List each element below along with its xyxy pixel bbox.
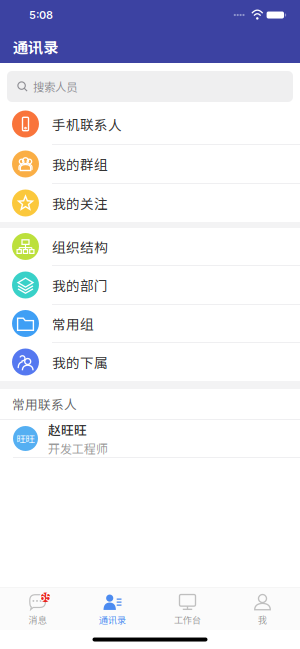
staticText: 我的下属 <box>52 352 108 372</box>
staticText: 我的部门 <box>52 275 108 295</box>
button[interactable]: 我的下属 <box>0 343 300 381</box>
button[interactable]: 旺旺 <box>0 420 300 458</box>
button[interactable]: 组织结构 <box>0 228 300 266</box>
staticText: 旺旺 <box>16 432 34 445</box>
staticText: 工作台 <box>174 613 201 626</box>
staticText: 组织结构 <box>52 237 108 256</box>
staticText: 消息 <box>28 613 46 626</box>
staticText: 常用组 <box>52 314 94 333</box>
staticText: 手机联系人 <box>52 114 122 134</box>
button[interactable]: 我的部门 <box>0 266 300 305</box>
staticText: 65 <box>39 591 51 603</box>
staticText: 通讯录 <box>99 613 126 626</box>
button[interactable]: 常用组 <box>0 305 300 343</box>
button[interactable]: 65 <box>0 588 75 630</box>
button[interactable]: 手机联系人 <box>0 104 300 145</box>
staticText: 开发工程师 <box>48 440 108 457</box>
staticText: 搜索人员 <box>33 78 77 95</box>
button[interactable]: 通讯录 <box>75 588 150 630</box>
staticText: 我的关注 <box>52 193 108 213</box>
button[interactable]: 我的关注 <box>0 184 300 222</box>
staticText: 5:08 <box>29 8 53 22</box>
staticText: 我 <box>258 613 267 626</box>
staticText: 常用联系人 <box>12 395 77 413</box>
button[interactable]: 工作台 <box>150 588 225 630</box>
staticText: 通讯录 <box>13 35 58 58</box>
staticText: 赵旺旺 <box>48 420 87 438</box>
staticText: 我的群组 <box>52 154 108 174</box>
button[interactable]: 我 <box>225 588 300 630</box>
button[interactable]: 我的群组 <box>0 145 300 184</box>
